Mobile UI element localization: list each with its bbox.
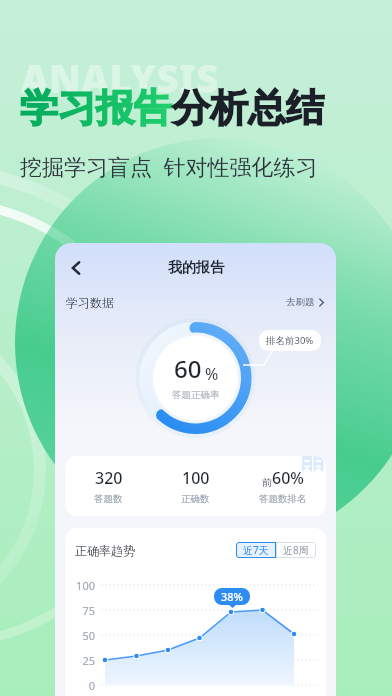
staticText: 320 <box>95 467 123 489</box>
staticText: 正确数 <box>181 493 210 505</box>
staticText: 38% <box>221 589 243 604</box>
staticText: 正确率趋势 <box>75 543 135 558</box>
button[interactable]: 320 <box>65 467 152 505</box>
button[interactable]: 排名前30% <box>259 330 321 351</box>
button[interactable]: 去刷题 <box>286 296 325 308</box>
staticText: 去刷题 <box>286 296 315 308</box>
staticText: 挖掘学习盲点 针对性强化练习 <box>20 151 318 181</box>
staticText: 60% <box>272 467 304 489</box>
staticText: ANALYSIS <box>21 52 219 104</box>
staticText: 学习报告 <box>20 84 172 132</box>
staticText: 答题正确率 <box>172 389 220 401</box>
staticText: 近7天 <box>243 543 269 557</box>
button[interactable]: 近8周 <box>276 542 316 558</box>
staticText: 学习数据 <box>66 295 114 310</box>
button[interactable]: Back <box>61 253 91 283</box>
staticText: 100 <box>182 467 210 489</box>
staticText: 25 <box>82 653 95 668</box>
staticText: 排名前30% <box>266 334 314 347</box>
staticText: 0 <box>88 678 95 693</box>
staticText: 分析总结 <box>172 84 324 132</box>
button[interactable]: 100 <box>152 467 239 505</box>
staticText: 答题数 <box>94 493 123 505</box>
staticText: 60 <box>174 352 202 385</box>
button[interactable]: 近7天 <box>236 542 276 558</box>
staticText: % <box>205 363 219 385</box>
button[interactable]: 前 <box>239 467 326 505</box>
staticText: 我的报告 <box>168 259 224 277</box>
staticText: 75 <box>82 603 95 618</box>
staticText: 50 <box>82 628 95 643</box>
staticText: 近8周 <box>283 543 309 557</box>
staticText: 答题数排名 <box>259 493 307 505</box>
staticText: 100 <box>76 578 95 593</box>
button[interactable]: 38% <box>214 588 250 605</box>
staticText: 前 <box>262 476 272 489</box>
